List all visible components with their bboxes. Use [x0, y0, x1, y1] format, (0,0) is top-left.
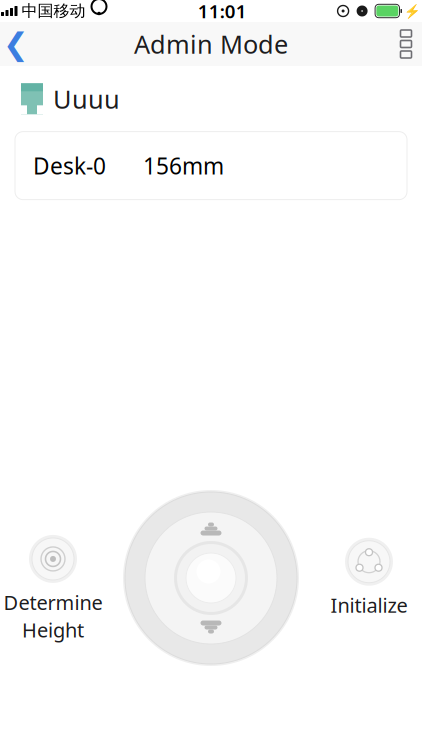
staticText: Determine: [3, 589, 102, 615]
staticText: ⚡: [404, 3, 421, 19]
button[interactable]: Determine: [0, 535, 113, 643]
staticText: Height: [22, 616, 84, 643]
staticText: Initialize: [330, 592, 407, 618]
staticText: Desk-0: [33, 151, 106, 181]
staticText: Uuuu: [53, 82, 120, 116]
staticText: 156mm: [143, 151, 224, 181]
staticText: Admin Mode: [134, 27, 288, 61]
staticText: ❮: [3, 27, 29, 61]
button[interactable]: Height control pad: [121, 488, 301, 668]
button[interactable]: Initialize: [309, 538, 422, 618]
staticText: 11:01: [198, 0, 247, 23]
button[interactable]: Back: [0, 22, 39, 66]
button[interactable]: Menu: [383, 22, 422, 66]
staticText: 中国移动: [21, 1, 85, 21]
